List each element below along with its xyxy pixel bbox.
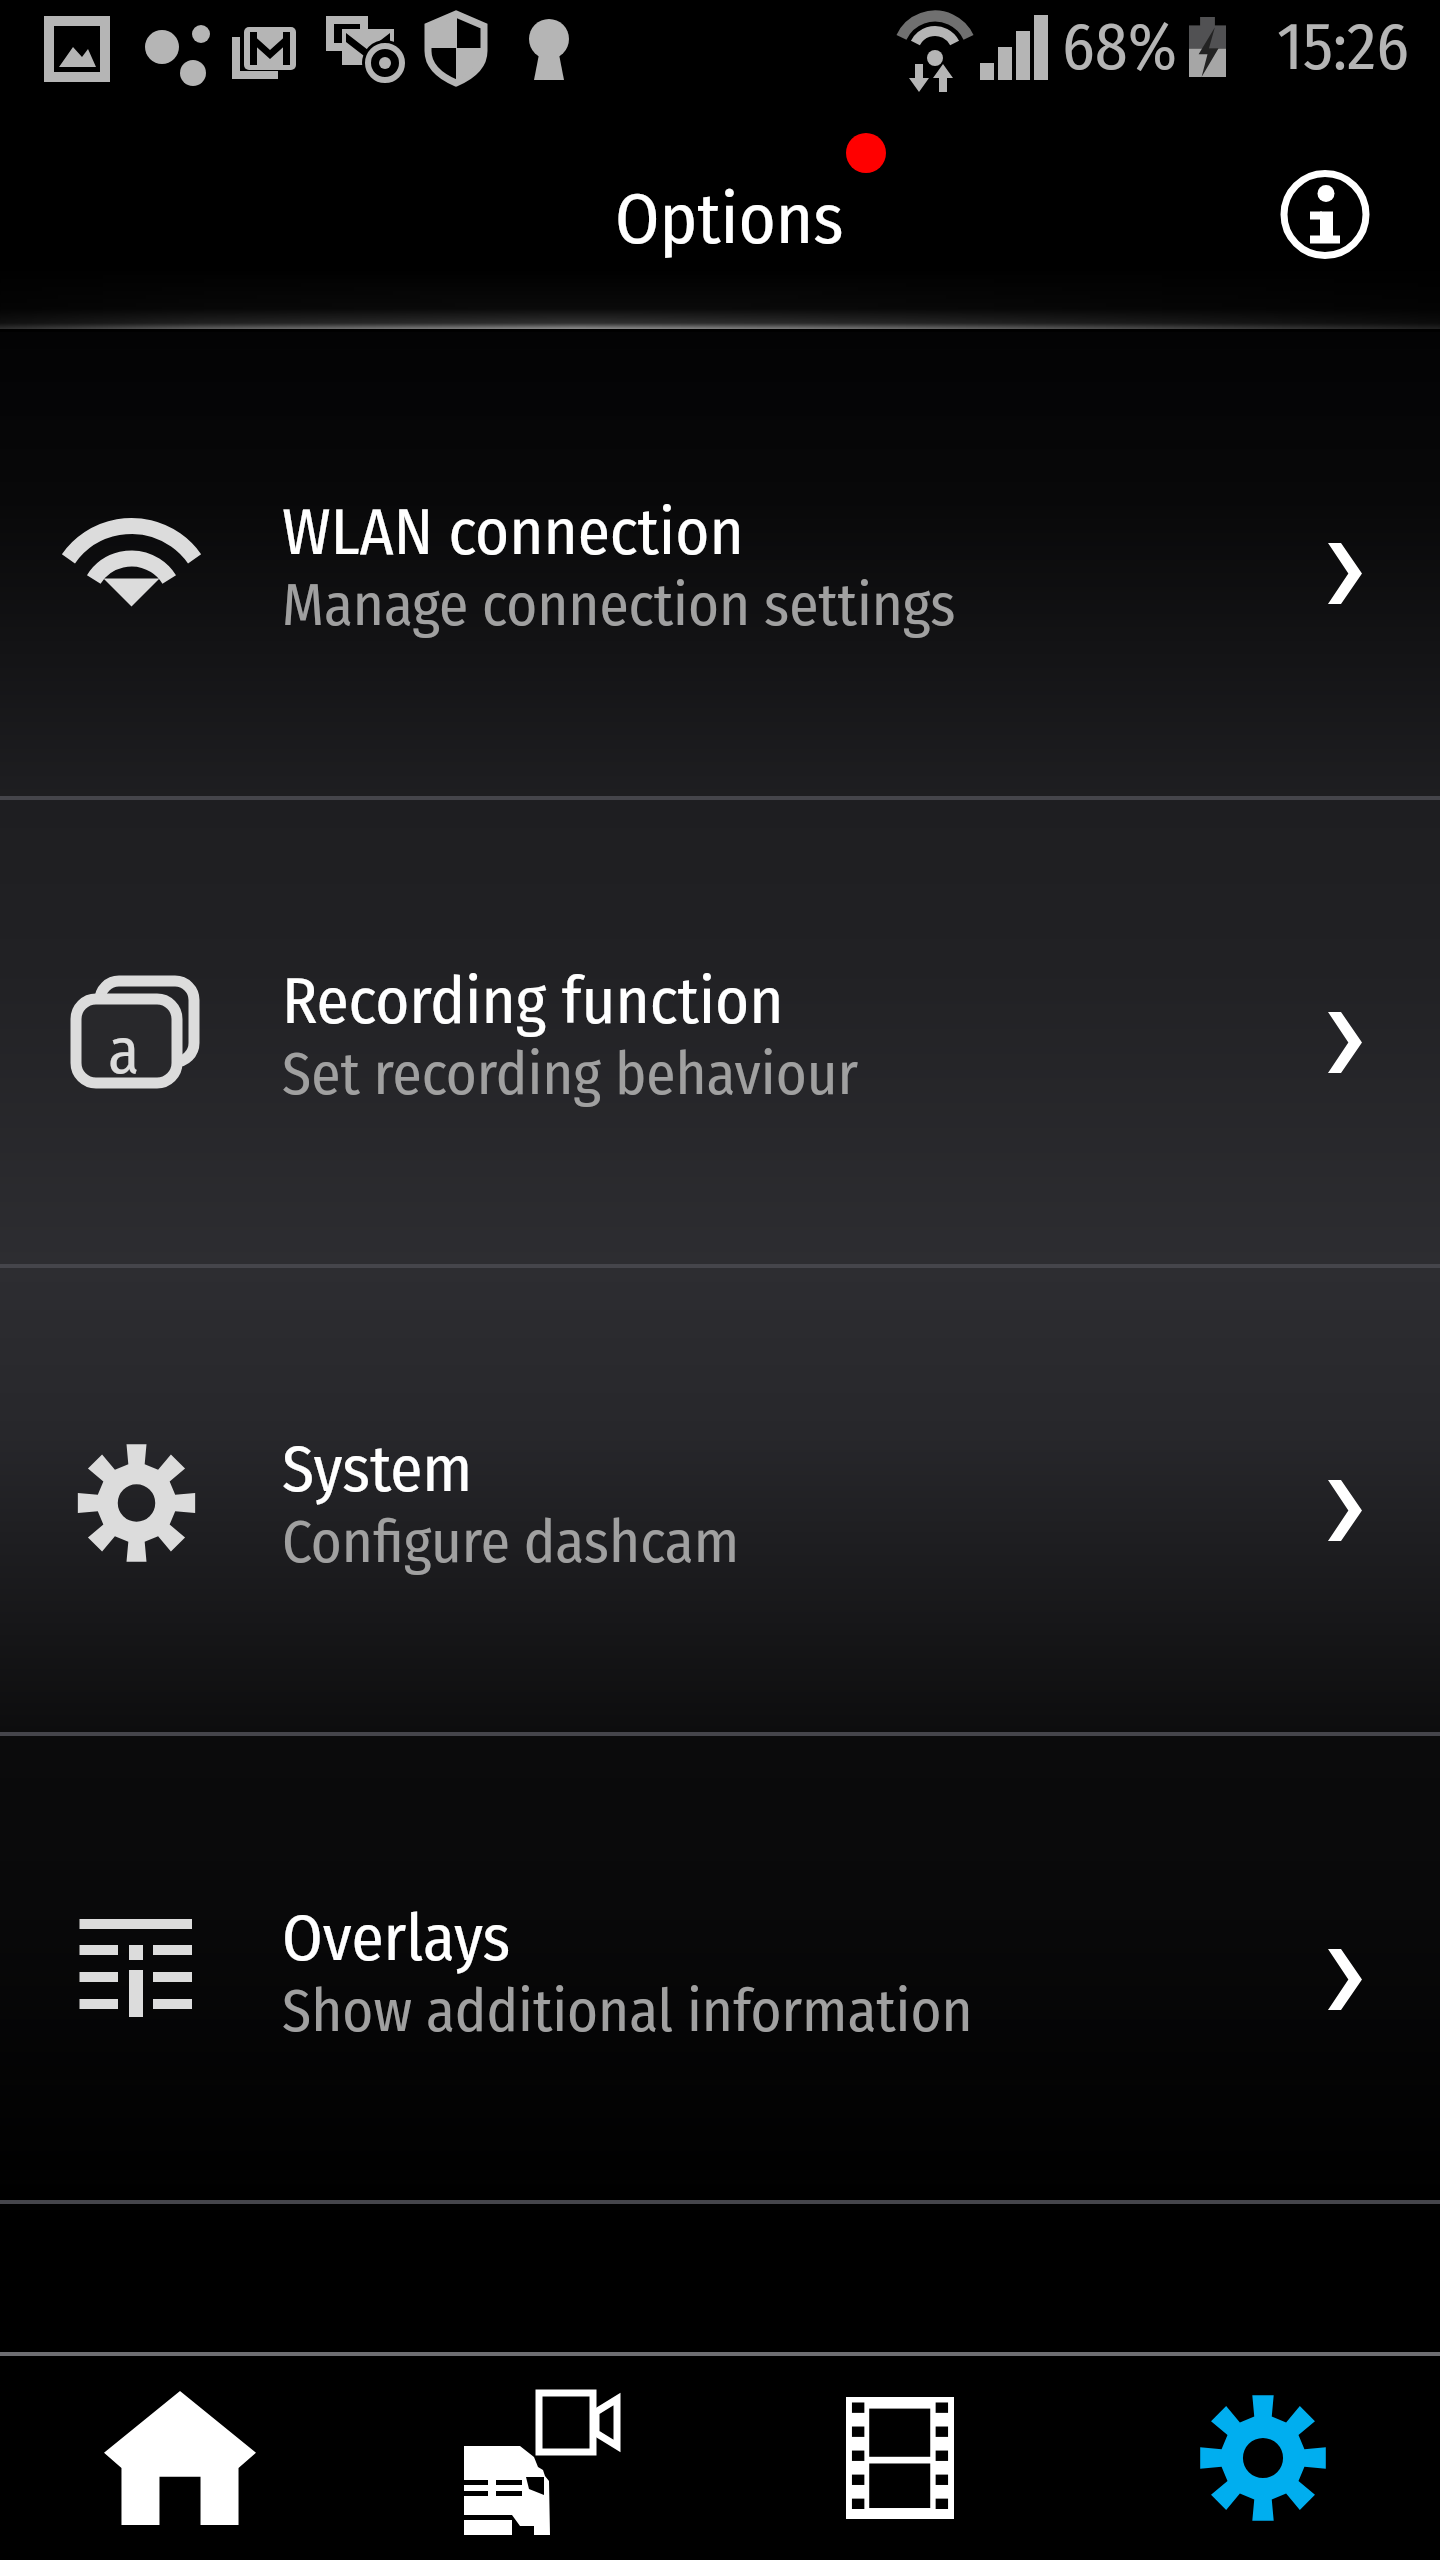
button[interactable]: System [0,1268,1440,1732]
button[interactable]: Dashcam recording [360,2356,720,2560]
staticText: Overlays [282,1899,511,1977]
staticText: 15:26 [1277,7,1409,86]
staticText: Configure dashcam [282,1507,740,1578]
button[interactable]: Info [1272,153,1378,259]
button[interactable]: Home [0,2356,360,2560]
button[interactable]: Settings [1080,2356,1440,2560]
staticText: a [108,1013,140,1090]
button[interactable]: a [0,800,1440,1264]
staticText: Recording function [282,962,784,1040]
staticText: WLAN connection [282,493,744,571]
staticText: Manage connection settings [282,570,956,641]
staticText: 68% [1062,7,1178,86]
staticText: System [282,1430,473,1508]
staticText: Set recording behaviour [282,1039,859,1110]
staticText: Show additional information [282,1976,973,2047]
button[interactable]: Overlays [0,1736,1440,2200]
button[interactable]: Videos [720,2356,1080,2560]
button[interactable]: WLAN connection [0,332,1440,796]
staticText: Options [615,177,844,262]
